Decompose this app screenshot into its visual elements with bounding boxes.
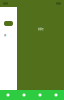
button[interactable]: Tab <box>0 93 16 96</box>
staticText: a <box>4 32 6 37</box>
button[interactable] <box>4 21 13 26</box>
button[interactable]: Tab <box>32 93 48 96</box>
button[interactable]: Tab <box>48 93 64 96</box>
staticText: title <box>37 26 43 31</box>
button[interactable]: Tab <box>16 93 32 96</box>
